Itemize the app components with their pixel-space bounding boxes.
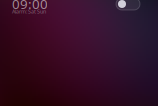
staticText: 09:00 bbox=[12, 0, 48, 13]
staticText: Alarm: Sat Sun bbox=[12, 8, 46, 15]
button[interactable]: Sleep Focus, off bbox=[116, 0, 140, 10]
